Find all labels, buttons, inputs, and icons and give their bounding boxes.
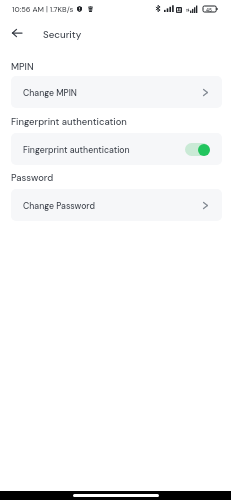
staticText: Change Password	[23, 200, 95, 211]
staticText: Password	[11, 172, 54, 184]
staticText: 45	[206, 7, 212, 13]
staticText: Change MPIN	[23, 87, 77, 98]
button[interactable]: Change Password	[11, 189, 222, 221]
button[interactable]: Fingerprint authentication	[11, 133, 222, 165]
button[interactable]: Back	[7, 23, 27, 43]
staticText: MPIN	[11, 61, 34, 73]
staticText: 10:56 AM | 1.7KB/s	[12, 5, 74, 15]
staticText: Fingerprint authentication	[11, 116, 127, 128]
button[interactable]: Change MPIN	[11, 76, 222, 108]
staticText: Fingerprint authentication	[23, 144, 130, 155]
staticText: Security	[43, 28, 82, 41]
